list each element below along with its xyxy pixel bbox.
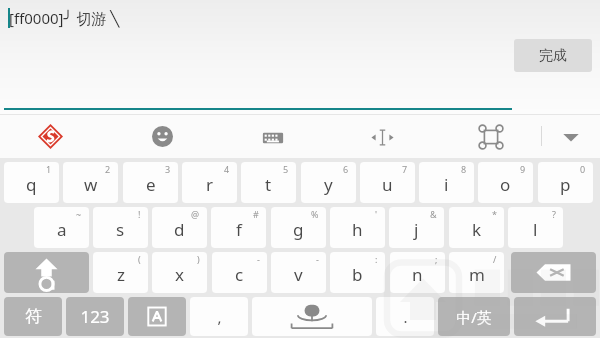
button[interactable]: Keyboard layout: [262, 127, 284, 149]
button[interactable]: m: [449, 252, 504, 293]
button[interactable]: Move cursor: [371, 126, 394, 149]
staticText: k: [472, 218, 482, 241]
staticText: 8: [461, 163, 467, 175]
button[interactable]: t: [241, 162, 296, 203]
button[interactable]: l: [508, 207, 563, 248]
staticText: j: [414, 218, 419, 241]
button[interactable]: ,: [190, 297, 248, 336]
button[interactable]: .: [376, 297, 434, 336]
staticText: v: [294, 263, 303, 286]
staticText: x: [175, 263, 184, 286]
staticText: @: [191, 208, 200, 220]
button[interactable]: a: [34, 207, 89, 248]
button[interactable]: w: [63, 162, 118, 203]
staticText: m: [469, 263, 485, 286]
staticText: f: [236, 218, 242, 241]
staticText: b: [352, 263, 363, 286]
button[interactable]: n: [390, 252, 445, 293]
button[interactable]: i: [419, 162, 474, 203]
staticText: p: [560, 173, 571, 196]
staticText: 5: [283, 163, 289, 175]
staticText: e: [146, 173, 156, 196]
staticText: o: [500, 173, 511, 196]
button[interactable]: Shift: [4, 252, 89, 293]
staticText: 完成: [539, 47, 567, 65]
button[interactable]: z: [93, 252, 148, 293]
button[interactable]: u: [360, 162, 415, 203]
button[interactable]: x: [152, 252, 207, 293]
staticText: #: [253, 208, 259, 220]
button[interactable]: Backspace: [511, 252, 596, 293]
staticText: 3: [165, 163, 171, 175]
button[interactable]: y: [301, 162, 356, 203]
staticText: w: [84, 173, 98, 196]
staticText: &: [430, 208, 437, 220]
button[interactable]: 符: [4, 297, 62, 336]
staticText: a: [57, 218, 67, 241]
staticText: 9: [520, 163, 526, 175]
button[interactable]: 中/英: [438, 297, 510, 336]
button[interactable]: Sogou input method: [38, 124, 63, 149]
staticText: 6: [343, 163, 349, 175]
staticText: r: [206, 173, 214, 196]
button[interactable]: q: [4, 162, 59, 203]
button[interactable]: g: [271, 207, 326, 248]
staticText: -: [257, 253, 260, 265]
staticText: !: [138, 208, 141, 220]
staticText: 123: [80, 305, 110, 328]
staticText: d: [174, 218, 185, 241]
staticText: c: [235, 263, 244, 286]
staticText: :: [375, 253, 378, 265]
button[interactable]: r: [182, 162, 237, 203]
staticText: %: [311, 208, 319, 220]
staticText: q: [26, 173, 37, 196]
button[interactable]: p: [538, 162, 593, 203]
button[interactable]: s: [93, 207, 148, 248]
staticText: h: [352, 218, 363, 241]
staticText: -: [316, 253, 319, 265]
staticText: (: [138, 253, 141, 265]
staticText: [ff0000]╯ 切游 ╲: [9, 8, 120, 28]
staticText: u: [382, 173, 393, 196]
staticText: g: [293, 218, 304, 241]
staticText: s: [116, 218, 125, 241]
staticText: i: [444, 173, 449, 196]
staticText: n: [412, 263, 423, 286]
button[interactable]: 123: [66, 297, 124, 336]
staticText: z: [117, 263, 125, 286]
staticText: *: [492, 208, 497, 220]
button[interactable]: Handwriting: [128, 297, 186, 336]
button[interactable]: h: [330, 207, 385, 248]
staticText: ?: [552, 208, 556, 220]
staticText: ): [197, 253, 200, 265]
button[interactable]: b: [330, 252, 385, 293]
staticText: /: [493, 253, 497, 265]
staticText: 4: [224, 163, 230, 175]
staticText: 1: [46, 163, 52, 175]
staticText: ;: [435, 253, 438, 265]
button[interactable]: c: [212, 252, 267, 293]
staticText: 2: [105, 163, 111, 175]
button[interactable]: e: [123, 162, 178, 203]
button[interactable]: v: [271, 252, 326, 293]
staticText: 符: [25, 306, 42, 327]
button[interactable]: 完成: [514, 39, 592, 72]
staticText: t: [265, 173, 272, 196]
staticText: .: [403, 307, 408, 327]
button[interactable]: j: [389, 207, 444, 248]
button[interactable]: o: [478, 162, 533, 203]
button[interactable]: f: [211, 207, 266, 248]
button[interactable]: Enter: [514, 297, 596, 336]
button[interactable]: k: [449, 207, 504, 248]
staticText: y: [324, 173, 333, 196]
button[interactable]: Emoji: [152, 126, 173, 147]
button[interactable]: Space: [252, 297, 372, 336]
staticText: 7: [402, 163, 408, 175]
button[interactable]: d: [152, 207, 207, 248]
staticText: l: [533, 218, 538, 241]
button[interactable]: Hide keyboard: [560, 130, 582, 144]
staticText: ,: [217, 307, 222, 327]
staticText: ': [375, 208, 378, 220]
button[interactable]: More functions: [480, 126, 502, 148]
staticText: 中/英: [456, 307, 492, 327]
